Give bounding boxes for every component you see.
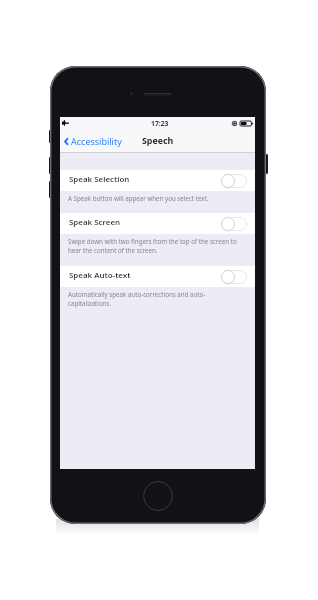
- staticText: Speak Auto-text: [69, 270, 131, 281]
- button[interactable]: Speak Selection: [60, 170, 255, 191]
- staticText: A Speak button will appear when you sele…: [68, 194, 209, 202]
- button[interactable]: Speak Screen: [221, 217, 247, 231]
- button[interactable]: Accessibility: [64, 135, 122, 147]
- staticText: Accessibility: [71, 135, 122, 147]
- staticText: Speak Selection: [69, 174, 130, 185]
- button[interactable]: Speak Selection: [221, 174, 247, 188]
- button[interactable]: Speak Screen: [60, 213, 255, 234]
- staticText: Swipe down with two fingers from the top…: [68, 237, 247, 255]
- staticText: 17:23: [151, 119, 169, 128]
- button[interactable]: Speak Auto-text: [221, 270, 247, 284]
- staticText: Speak Screen: [69, 217, 121, 228]
- staticText: Automatically speak auto-corrections and…: [68, 290, 247, 308]
- staticText: Speech: [142, 135, 174, 147]
- button[interactable]: Speak Auto-text: [60, 266, 255, 287]
